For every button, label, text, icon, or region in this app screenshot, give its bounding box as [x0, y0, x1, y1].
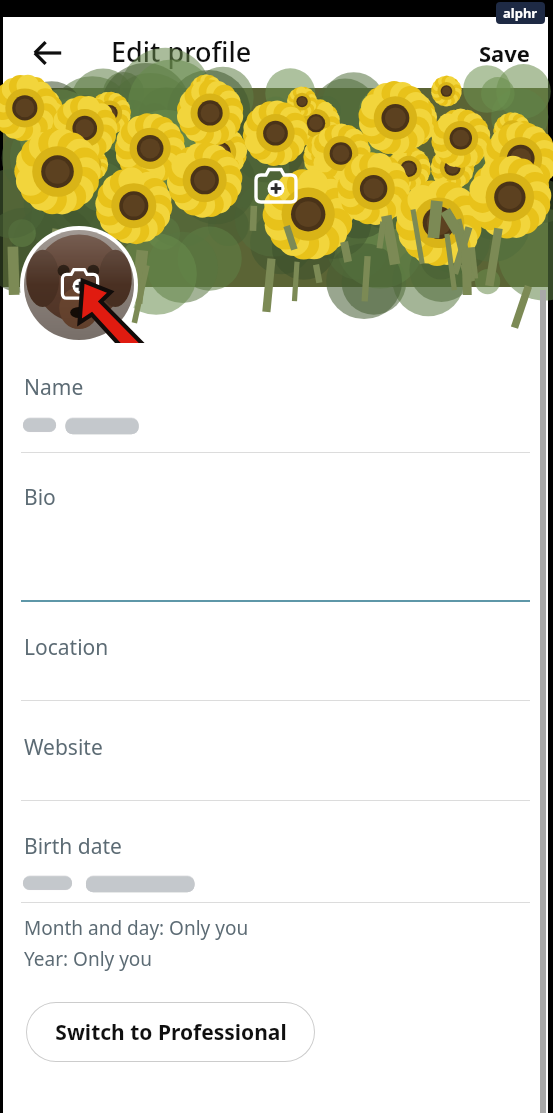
- staticText: Bio: [24, 483, 56, 512]
- button[interactable]: Switch to Professional: [26, 1002, 315, 1062]
- button[interactable]: Edit profile: [111, 33, 252, 70]
- staticText: Name: [24, 373, 84, 402]
- button[interactable]: Name: [3, 343, 548, 402]
- button[interactable]: Birth date: [3, 801, 548, 861]
- staticText: Save: [479, 38, 530, 68]
- staticText: alphr: [503, 4, 538, 22]
- staticText: Edit profile: [111, 33, 252, 70]
- staticText: Birth date: [24, 832, 122, 861]
- button[interactable]: Website: [3, 701, 548, 762]
- staticText: Year: Only you: [24, 946, 153, 972]
- button[interactable]: Change header photo: [3, 88, 548, 287]
- button[interactable]: Change profile photo: [24, 230, 134, 340]
- staticText: Website: [24, 733, 103, 762]
- staticText: Switch to Professional: [55, 1018, 287, 1047]
- button[interactable]: Location: [3, 602, 548, 662]
- button[interactable]: Back: [25, 30, 71, 76]
- staticText: Location: [24, 633, 109, 662]
- button[interactable]: Bio: [3, 453, 548, 512]
- staticText: Month and day: Only you: [24, 915, 249, 941]
- button[interactable]: Save: [469, 30, 540, 76]
